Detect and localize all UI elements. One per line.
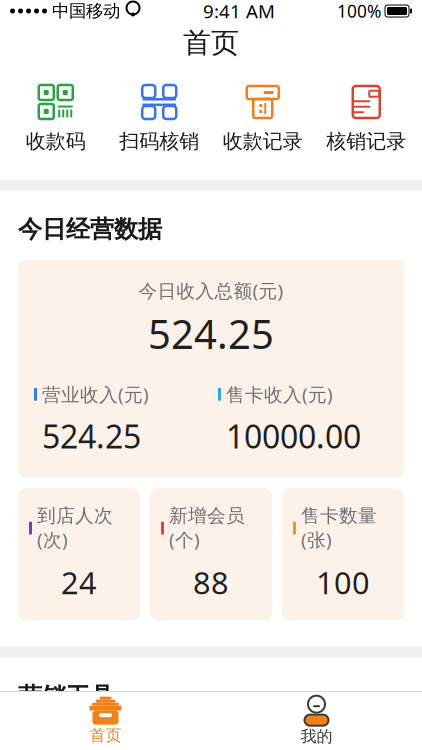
button[interactable]: 售卡数量(张) xyxy=(282,488,404,621)
button[interactable]: 到店人次(次) xyxy=(18,488,140,621)
button[interactable]: 核销记录 xyxy=(314,80,418,158)
button[interactable]: 收款记录 xyxy=(211,80,314,158)
staticText: 核销记录 xyxy=(326,129,406,154)
staticText: 524.25 xyxy=(148,307,274,360)
staticText: 扫码核销 xyxy=(119,129,199,154)
button[interactable]: 锁客 xyxy=(107,729,211,750)
staticText: 到店人次(次) xyxy=(37,504,113,552)
staticText: 售卡收入(元) xyxy=(226,382,333,407)
button[interactable]: 引客 xyxy=(4,729,107,750)
button[interactable]: 首页 xyxy=(0,691,211,750)
button[interactable]: 扫码核销 xyxy=(107,80,211,158)
staticText: 售卡数量(张) xyxy=(301,504,377,552)
staticText: 收款记录 xyxy=(223,129,303,154)
button[interactable]: 新增会员(个) xyxy=(150,488,272,621)
staticText: 我的 xyxy=(300,727,332,746)
staticText: 524.25 xyxy=(42,415,141,457)
staticText: 今日经营数据 xyxy=(18,215,162,244)
button[interactable]: 红包 xyxy=(211,729,314,750)
staticText: 首页 xyxy=(89,726,121,745)
button[interactable]: 收款码 xyxy=(4,80,107,158)
staticText: 88 xyxy=(193,562,229,603)
staticText: 新增会员(个) xyxy=(169,504,245,552)
staticText: 中国移动 xyxy=(52,0,120,22)
staticText: 10000.00 xyxy=(226,415,361,457)
staticText: 24 xyxy=(61,562,97,603)
staticText: 收款码 xyxy=(26,129,86,154)
staticText: 营业收入(元) xyxy=(42,382,149,407)
button[interactable]: 我的 xyxy=(211,690,422,750)
button[interactable]: ♥ xyxy=(314,729,418,750)
staticText: 今日收入总额(元) xyxy=(138,278,283,303)
staticText: 首页 xyxy=(183,26,239,60)
staticText: 营销工具 xyxy=(18,682,114,711)
staticText: 100 xyxy=(316,562,370,603)
staticText: 100% xyxy=(337,0,381,22)
staticText: 9:41 AM xyxy=(203,0,275,23)
